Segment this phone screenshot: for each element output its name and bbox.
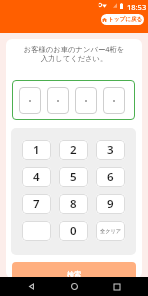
button[interactable]: 3 xyxy=(96,140,125,160)
button[interactable]: 1 xyxy=(22,140,51,160)
button[interactable]: Digit xyxy=(103,87,125,114)
button[interactable]: Digit xyxy=(47,87,69,114)
button[interactable]: 8 xyxy=(59,194,88,214)
staticText: 5 xyxy=(70,169,77,185)
button[interactable]: 9 xyxy=(96,194,125,214)
staticText: 2 xyxy=(70,142,77,158)
staticText: 1 xyxy=(33,142,40,158)
staticText: 7 xyxy=(33,196,40,212)
button[interactable]: 検索 xyxy=(12,262,136,278)
staticText: 0 xyxy=(70,223,77,239)
staticText: トップに戻る xyxy=(108,16,143,23)
button[interactable]: Digit xyxy=(75,87,97,114)
button[interactable]: Digit xyxy=(19,87,41,114)
button[interactable]: トップに戻る xyxy=(101,14,144,25)
button[interactable]: 0 xyxy=(59,221,88,241)
button[interactable]: Recent apps xyxy=(105,277,129,296)
staticText: 3 xyxy=(107,142,114,158)
button[interactable]: 6 xyxy=(96,167,125,187)
button[interactable]: Home xyxy=(62,277,86,296)
button[interactable]: 5 xyxy=(59,167,88,187)
button[interactable]: Blank key xyxy=(22,221,51,241)
staticText: 8 xyxy=(70,196,77,212)
staticText: 4 xyxy=(33,169,40,185)
button[interactable]: 4 xyxy=(22,167,51,187)
staticText: お客様のお車のナンバー4桁を 入力してください。 xyxy=(6,44,142,63)
button[interactable]: 全クリア xyxy=(96,221,125,241)
button[interactable]: 7 xyxy=(22,194,51,214)
staticText: 6 xyxy=(107,169,114,185)
button[interactable]: Back xyxy=(19,277,43,296)
staticText: 全クリア xyxy=(100,228,122,235)
staticText: 18:53 xyxy=(127,2,147,12)
button[interactable]: 2 xyxy=(59,140,88,160)
staticText: 検索 xyxy=(67,270,81,278)
staticText: 9 xyxy=(107,196,114,212)
